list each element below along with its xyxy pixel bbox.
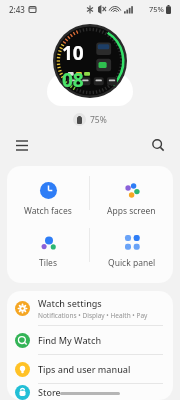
staticText: Notifications • Display • Health • Pay bbox=[38, 311, 148, 320]
button[interactable]: Watch faces bbox=[7, 176, 89, 221]
button[interactable]: Quick panel bbox=[90, 228, 173, 273]
button[interactable]: Find My Watch bbox=[7, 326, 173, 354]
staticText: 2:43 bbox=[9, 4, 25, 15]
staticText: Find My Watch bbox=[38, 334, 102, 346]
staticText: Watch settings bbox=[38, 297, 102, 309]
button[interactable]: Apps screen bbox=[90, 176, 173, 221]
staticText: 10 bbox=[62, 40, 84, 66]
staticText: Tips and user manual bbox=[38, 363, 131, 375]
button[interactable]: Tips and user manual bbox=[7, 355, 173, 383]
staticText: Apps screen bbox=[107, 205, 156, 217]
staticText: Store bbox=[38, 386, 61, 398]
staticText: Quick panel bbox=[108, 257, 156, 269]
staticText: Tiles bbox=[39, 257, 57, 269]
button[interactable]: Store bbox=[7, 384, 173, 400]
staticText: 08 bbox=[62, 67, 84, 93]
button[interactable]: Search bbox=[146, 133, 170, 157]
button[interactable]: Tiles bbox=[7, 228, 89, 273]
staticText: 75% bbox=[149, 4, 164, 14]
staticText: 75% bbox=[90, 114, 107, 126]
button[interactable]: Watch settings bbox=[7, 291, 173, 325]
button[interactable]: Menu bbox=[10, 133, 34, 157]
staticText: Watch faces bbox=[24, 205, 72, 217]
